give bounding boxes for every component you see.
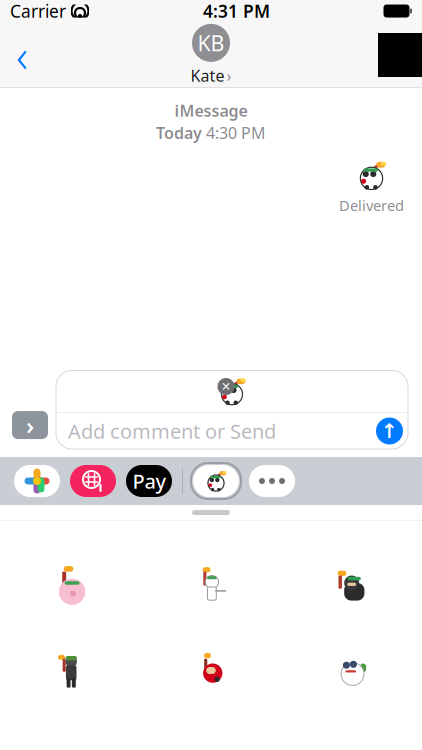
button[interactable]: Back bbox=[0, 30, 44, 80]
button[interactable]: Pig sticker bbox=[0, 564, 141, 608]
button[interactable]: Sticker pack bbox=[193, 465, 239, 497]
staticText: Kate bbox=[190, 65, 224, 86]
button[interactable]: Apple Pay bbox=[126, 465, 172, 497]
staticText: ↑ bbox=[381, 420, 398, 442]
staticText: Add comment or Send bbox=[68, 418, 276, 444]
staticText: › bbox=[226, 65, 231, 86]
staticText: Today bbox=[156, 122, 202, 143]
button[interactable]: Goggles sticker bbox=[281, 648, 422, 692]
staticText: Pay bbox=[132, 468, 166, 494]
button[interactable]: Show apps bbox=[12, 409, 48, 441]
button[interactable]: Remove sticker bbox=[217, 378, 234, 395]
staticText: Carrier bbox=[10, 0, 66, 22]
staticText: 4:30 PM bbox=[206, 122, 266, 143]
button[interactable]: Send bbox=[376, 417, 403, 444]
button[interactable]: Stick figure sticker bbox=[141, 564, 281, 608]
button[interactable]: Red hood sticker bbox=[141, 648, 281, 692]
staticText: › bbox=[26, 409, 34, 441]
staticText: 4:31 PM bbox=[203, 0, 270, 22]
button[interactable]: Photos bbox=[14, 465, 60, 497]
staticText: iMessage bbox=[174, 100, 247, 121]
staticText: ✕ bbox=[221, 380, 231, 393]
staticText: Delivered bbox=[339, 195, 404, 215]
button[interactable]: More apps bbox=[249, 465, 295, 497]
staticText: KB bbox=[197, 29, 224, 57]
button[interactable]: Ninja sticker bbox=[281, 564, 422, 608]
button[interactable]: Images bbox=[70, 465, 116, 497]
button[interactable]: Suit sticker bbox=[0, 648, 141, 692]
staticText: ‹ bbox=[16, 25, 28, 85]
